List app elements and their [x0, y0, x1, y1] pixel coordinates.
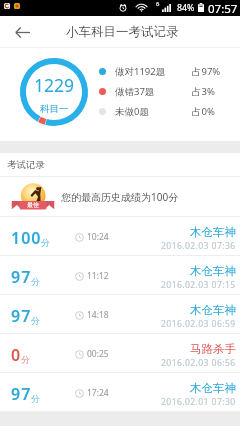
staticText: 10:24	[87, 231, 109, 243]
staticText: 做错37题	[115, 85, 155, 98]
staticText: 14:18	[87, 309, 109, 321]
staticText: 07:57	[208, 1, 238, 17]
staticText: 木仓车神	[190, 264, 236, 278]
staticText: 2016.02.03 06:56	[161, 357, 236, 369]
staticText: 木仓车神	[190, 381, 236, 395]
staticText: 占0%	[192, 105, 215, 118]
staticText: 分	[31, 276, 40, 287]
button[interactable]: 97	[0, 256, 240, 295]
staticText: 2016.02.03 06:59	[161, 318, 236, 330]
staticText: 97	[11, 305, 32, 327]
button[interactable]: 0	[0, 334, 240, 373]
staticText: 占3%	[192, 85, 215, 98]
staticText: 2016.02.01 07:30	[161, 396, 236, 408]
staticText: 木仓车神	[190, 303, 236, 317]
staticText: 2016.02.03 07:15	[161, 279, 236, 291]
staticText: 科目一	[40, 103, 69, 115]
staticText: 2016.02.03 07:36	[161, 240, 236, 252]
button[interactable]: Back	[11, 21, 33, 43]
staticText: 97	[11, 383, 32, 405]
staticText: 您的最高历史成绩为100分	[61, 190, 179, 204]
button[interactable]: 最佳	[0, 177, 240, 217]
staticText: 马路杀手	[190, 342, 236, 356]
staticText: 考试记录	[7, 159, 45, 171]
staticText: 100	[11, 227, 42, 249]
staticText: 6	[156, 0, 160, 8]
staticText: 木仓车神	[190, 225, 236, 239]
staticText: 小车科目一考试记录	[66, 24, 179, 40]
staticText: 占97%	[192, 65, 221, 78]
staticText: 00:25	[87, 348, 109, 360]
button[interactable]: 97	[0, 295, 240, 334]
staticText: 1229	[34, 73, 75, 97]
staticText: 分	[31, 315, 40, 326]
button[interactable]: 97	[0, 373, 240, 412]
staticText: 0	[11, 344, 22, 366]
staticText: 未做0题	[115, 105, 149, 118]
staticText: 分	[41, 237, 50, 248]
staticText: 11:12	[87, 270, 109, 282]
staticText: 97	[11, 266, 32, 288]
staticText: 分	[31, 393, 40, 404]
staticText: 84%	[177, 2, 195, 14]
staticText: 最佳	[27, 201, 39, 209]
button[interactable]: 100	[0, 217, 240, 256]
staticText: 17:24	[87, 387, 109, 399]
staticText: 做对1192题	[115, 65, 166, 78]
staticText: 分	[21, 354, 30, 365]
